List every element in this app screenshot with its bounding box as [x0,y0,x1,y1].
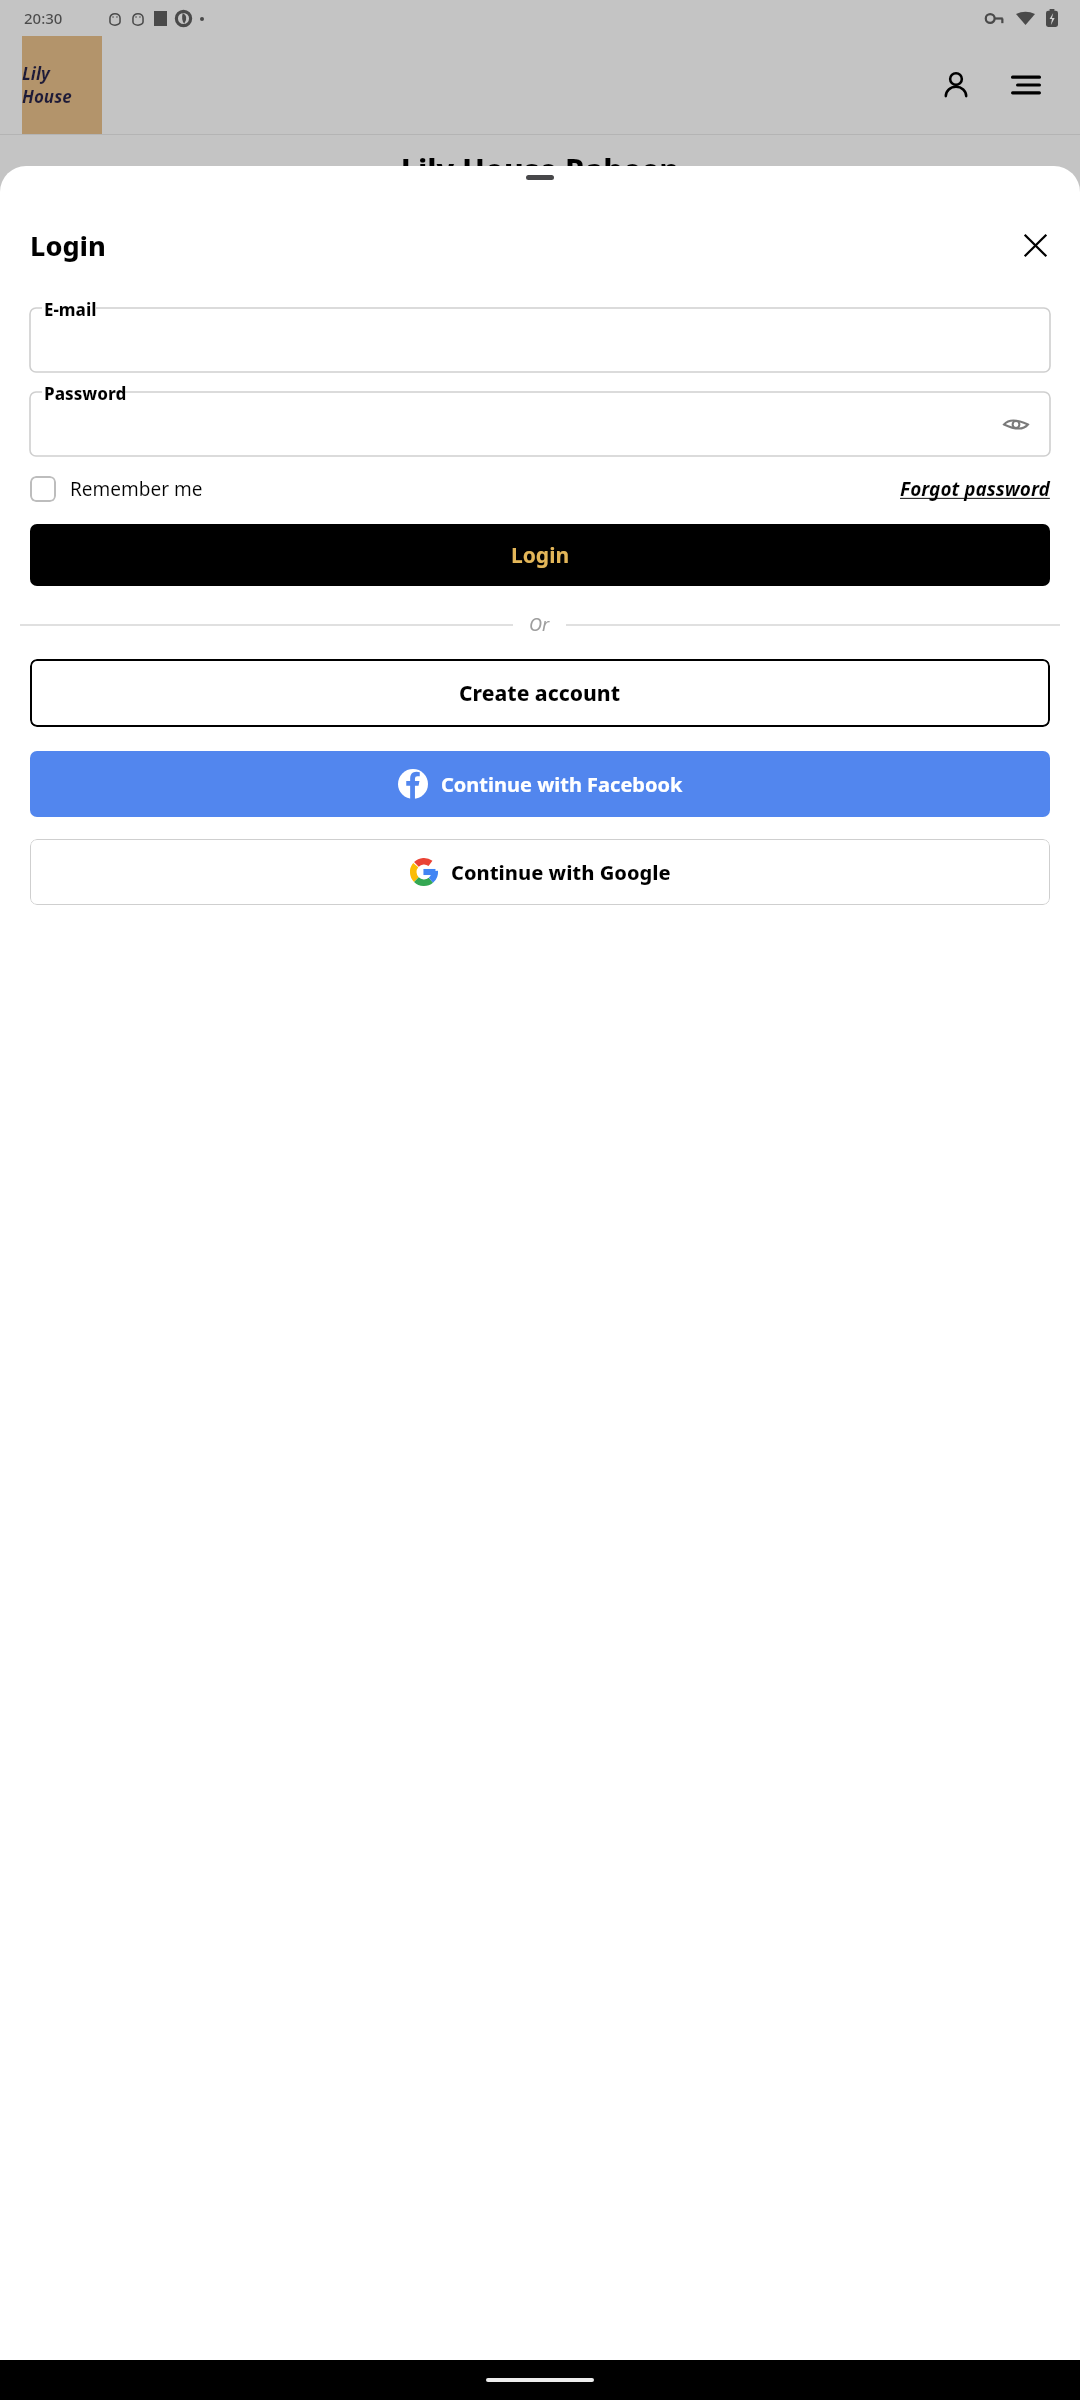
staticText: Create account [459,679,621,708]
staticText: Password [44,382,127,405]
button[interactable]: Show password [996,404,1036,444]
staticText: E-mail [44,298,97,321]
staticText: Continue with Facebook [441,771,683,798]
button[interactable]: Create account [30,659,1050,727]
staticText: Lily House [22,62,102,108]
button[interactable]: Forgot password [900,476,1050,502]
button[interactable]: Lily House logo [22,36,102,134]
staticText: 20:30 [24,8,63,28]
button[interactable]: Menu [1002,61,1050,109]
staticText: Forgot password [900,476,1050,502]
staticText: Lily House Raheen [0,149,1080,190]
button[interactable]: Continue with Facebook [30,751,1050,817]
button[interactable]: Continue with Google [30,839,1050,905]
staticText: Continue with Google [451,859,671,886]
button[interactable]: Close [1012,222,1058,268]
button[interactable]: Login [30,524,1050,586]
staticText: Remember me [70,476,203,502]
button[interactable]: Account [932,61,980,109]
staticText: Or [529,612,550,637]
staticText: Login [511,541,570,570]
staticText: Login [30,227,106,264]
button[interactable]: Remember me [30,476,203,502]
